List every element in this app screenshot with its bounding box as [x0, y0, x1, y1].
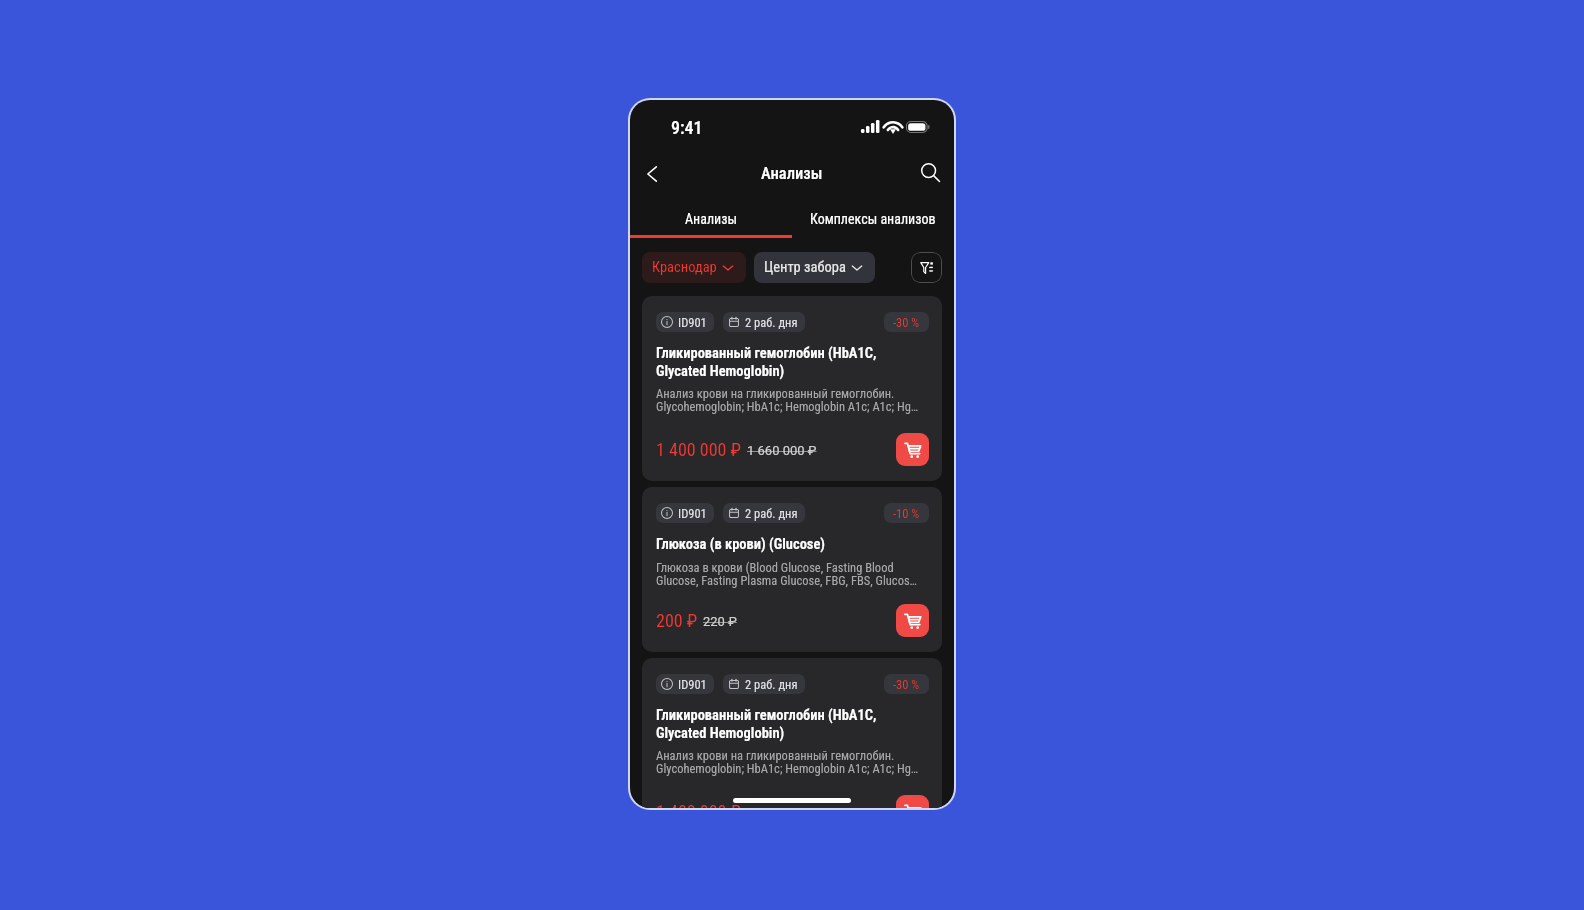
staticText: -10 %: [893, 506, 920, 521]
staticText: ID901: [678, 677, 707, 692]
button[interactable]: Add to cart: [896, 433, 929, 466]
staticText: -30 %: [893, 315, 920, 330]
button[interactable]: ID901: [642, 296, 942, 481]
staticText: 1 400 000 ₽: [656, 801, 742, 808]
button[interactable]: Центр забора: [754, 252, 875, 283]
button[interactable]: Search: [913, 155, 947, 189]
button[interactable]: Back: [635, 157, 669, 191]
button[interactable]: Анализы: [630, 200, 792, 238]
staticText: ID901: [678, 506, 707, 521]
staticText: Краснодар: [652, 259, 717, 276]
staticText: Анализы: [685, 211, 737, 227]
staticText: Анализ крови на гликированный гемоглобин…: [656, 386, 929, 414]
staticText: 1 660 000 ₽: [747, 443, 817, 458]
staticText: 220 ₽: [703, 614, 737, 629]
staticText: -30 %: [893, 677, 920, 692]
staticText: 1 400 000 ₽: [656, 439, 742, 460]
staticText: Глюкоза (в крови) (Glucose): [656, 536, 826, 553]
staticText: 200 ₽: [656, 610, 698, 631]
staticText: Гликированный гемоглобин (HbA1C, Glycate…: [656, 707, 929, 741]
staticText: Гликированный гемоглобин (HbA1C, Glycate…: [656, 345, 929, 379]
button[interactable]: Краснодар: [642, 252, 746, 283]
staticText: 2 раб. дня: [745, 677, 798, 692]
button[interactable]: Filters: [911, 252, 942, 283]
button[interactable]: Add to cart: [896, 604, 929, 637]
button[interactable]: Комплексы анализов: [792, 200, 954, 238]
staticText: Анализ крови на гликированный гемоглобин…: [656, 748, 929, 776]
staticText: Центр забора: [764, 259, 846, 276]
staticText: 2 раб. дня: [745, 506, 798, 521]
staticText: Анализы: [761, 164, 823, 183]
button[interactable]: ID901: [642, 658, 942, 808]
button[interactable]: ID901: [642, 487, 942, 652]
staticText: Комплексы анализов: [810, 211, 936, 227]
staticText: 9:41: [671, 117, 703, 138]
staticText: Глюкоза в крови (Blood Glucose, Fasting …: [656, 560, 929, 588]
staticText: ID901: [678, 315, 707, 330]
staticText: 2 раб. дня: [745, 315, 798, 330]
button[interactable]: Add to cart: [896, 795, 929, 808]
